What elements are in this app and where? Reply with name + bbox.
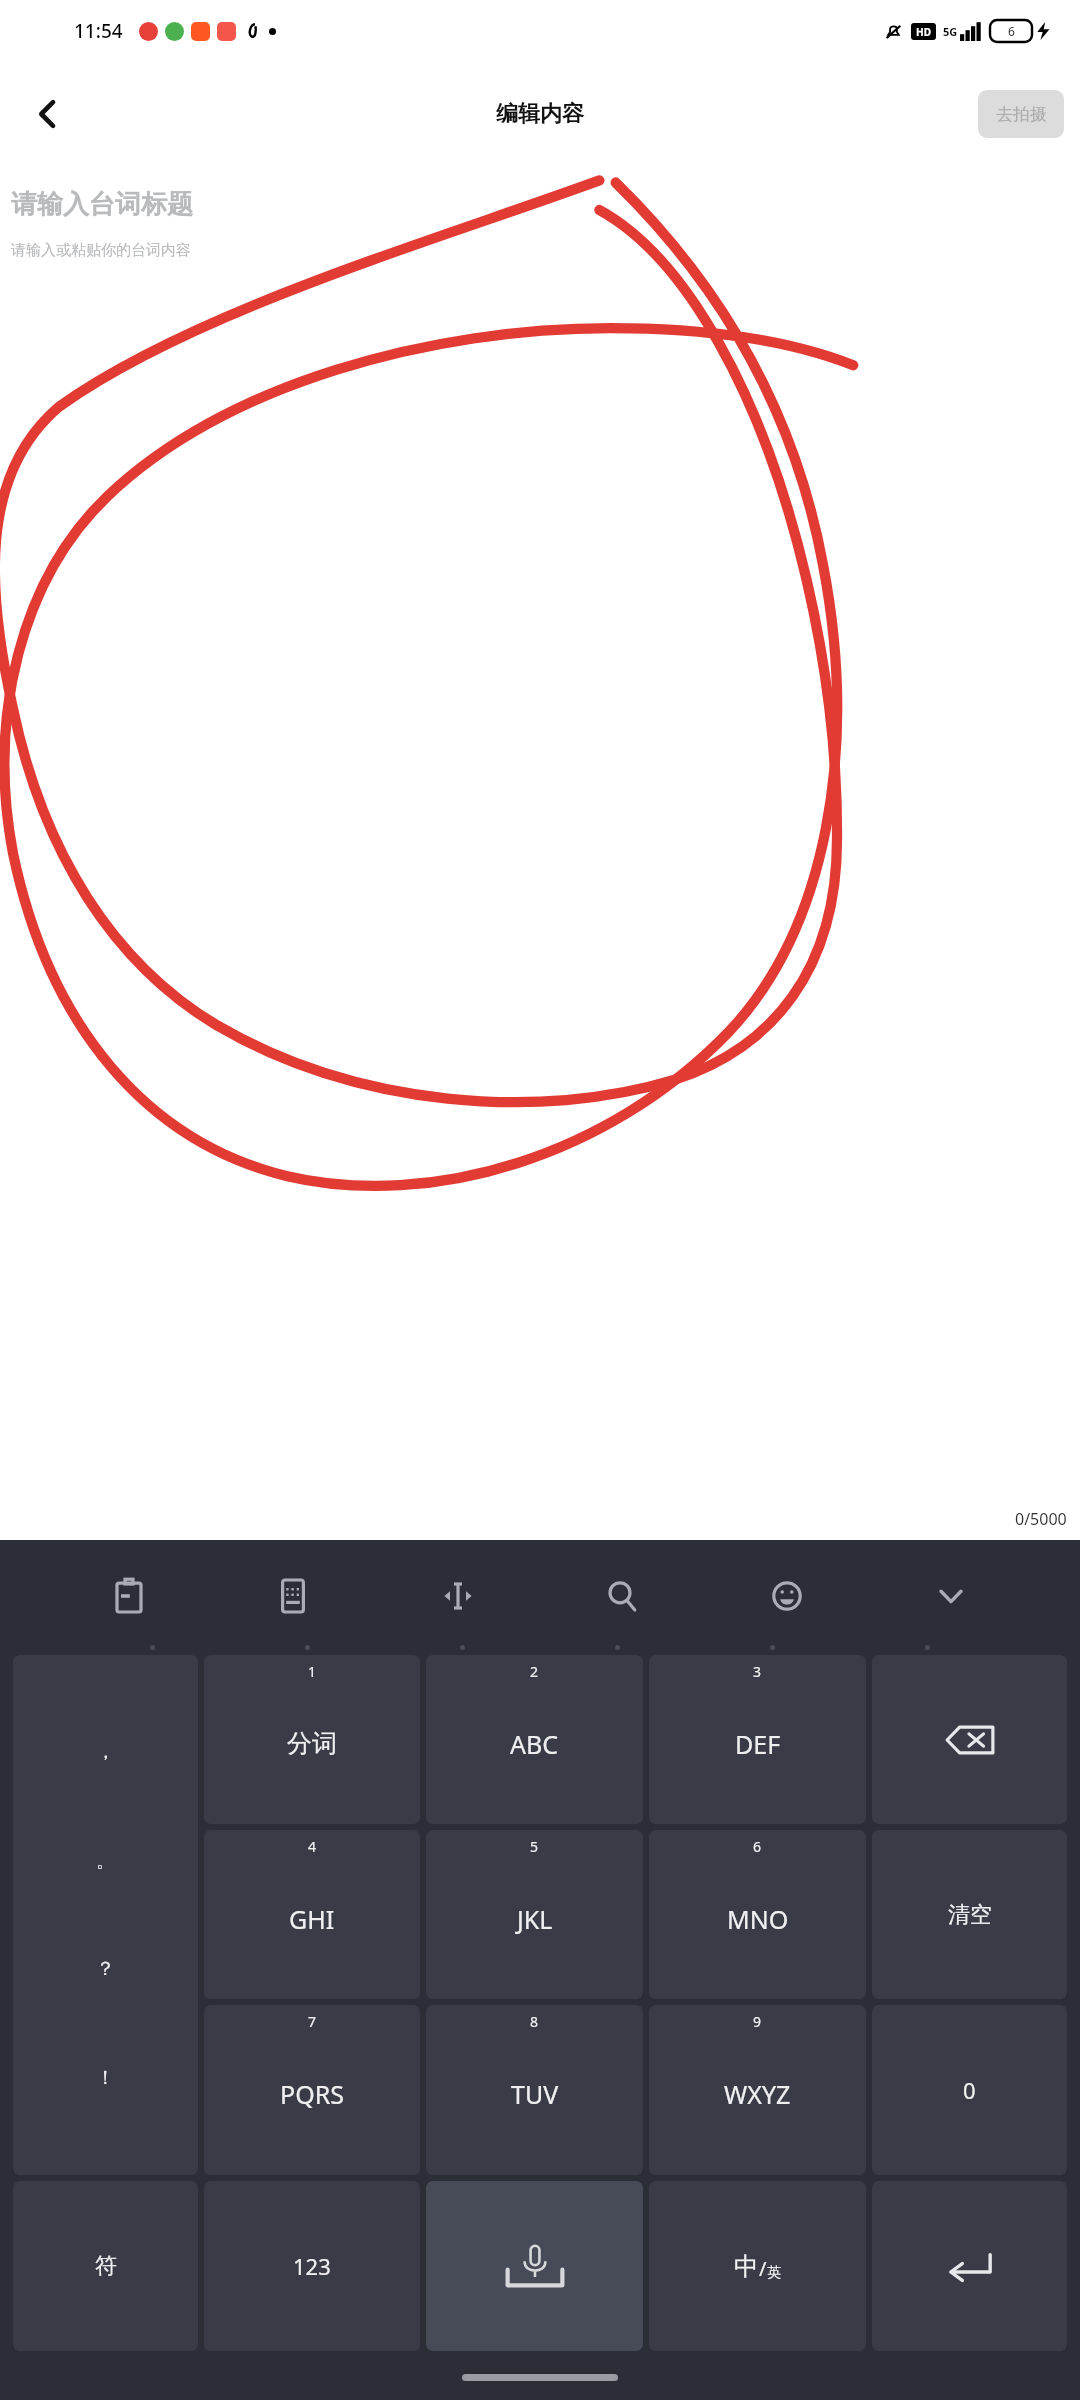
button[interactable]: 7	[204, 2005, 420, 2175]
staticText: 0	[963, 2075, 976, 2105]
staticText: GHI	[289, 1902, 335, 1936]
button[interactable]: 3	[649, 1655, 866, 1824]
button[interactable]: Clipboard	[93, 1560, 165, 1632]
staticText: HD	[916, 25, 931, 39]
staticText: 3	[753, 1662, 762, 1681]
staticText: 9	[753, 2012, 762, 2031]
staticText: 符	[95, 2252, 117, 2280]
button[interactable]: Move cursor	[422, 1560, 494, 1632]
staticText: 分词	[287, 1728, 337, 1759]
staticText: DEF	[735, 1727, 781, 1761]
button[interactable]: 中	[649, 2181, 866, 2351]
staticText: TUV	[511, 2077, 559, 2111]
staticText: WXYZ	[724, 2077, 791, 2111]
button[interactable]: Emoji	[751, 1560, 823, 1632]
staticText: 11:54	[74, 18, 123, 44]
button[interactable]: Hide keyboard	[915, 1560, 987, 1632]
button[interactable]: Back	[20, 86, 76, 142]
button[interactable]: 清空	[872, 1830, 1067, 1999]
staticText: ？	[96, 1957, 115, 1981]
staticText: 7	[308, 2012, 317, 2031]
staticText: 8	[530, 2012, 539, 2031]
staticText: 请输入或粘贴你的台词内容	[11, 241, 191, 260]
staticText: PQRS	[280, 2077, 344, 2111]
staticText: 。	[96, 1849, 115, 1873]
button[interactable]: 5	[426, 1830, 643, 1999]
button[interactable]: 0	[872, 2005, 1067, 2175]
staticText: 2	[530, 1662, 539, 1681]
staticText: 英	[767, 2264, 781, 2282]
button[interactable]: 2	[426, 1655, 643, 1824]
button[interactable]: Search	[586, 1560, 658, 1632]
staticText: 1	[308, 1662, 317, 1681]
staticText: 去拍摄	[996, 104, 1047, 125]
button[interactable]: 8	[426, 2005, 643, 2175]
button[interactable]: 4	[204, 1830, 420, 1999]
button[interactable]: Enter	[872, 2181, 1067, 2351]
staticText: 123	[293, 2251, 331, 2281]
staticText: ，	[96, 1740, 115, 1764]
staticText: 清空	[948, 1901, 992, 1929]
button[interactable]: 符	[13, 2181, 198, 2351]
staticText: MNO	[727, 1902, 789, 1936]
staticText: /	[759, 2255, 767, 2282]
staticText: 请输入台词标题	[11, 188, 193, 221]
button[interactable]: Keyboard layout	[257, 1560, 329, 1632]
staticText: 5G	[943, 24, 958, 39]
staticText: 中	[734, 2251, 759, 2282]
staticText: ABC	[510, 1727, 559, 1761]
staticText: 5	[530, 1837, 539, 1856]
button[interactable]: 1	[204, 1655, 420, 1824]
staticText: 6	[753, 1837, 762, 1856]
button[interactable]: 9	[649, 2005, 866, 2175]
button[interactable]: 6	[649, 1830, 866, 1999]
staticText: JKL	[517, 1902, 553, 1936]
staticText: 0/5000	[1015, 1508, 1067, 1530]
button[interactable]: Backspace	[872, 1655, 1067, 1824]
staticText: 编辑内容	[496, 100, 584, 128]
staticText: 6	[1008, 23, 1015, 39]
button[interactable]: ，	[13, 1655, 198, 2175]
staticText: ！	[96, 2066, 115, 2090]
button[interactable]: 123	[204, 2181, 420, 2351]
staticText: 4	[308, 1837, 317, 1856]
button[interactable]: Space	[426, 2181, 643, 2351]
button[interactable]: 去拍摄	[978, 90, 1064, 138]
